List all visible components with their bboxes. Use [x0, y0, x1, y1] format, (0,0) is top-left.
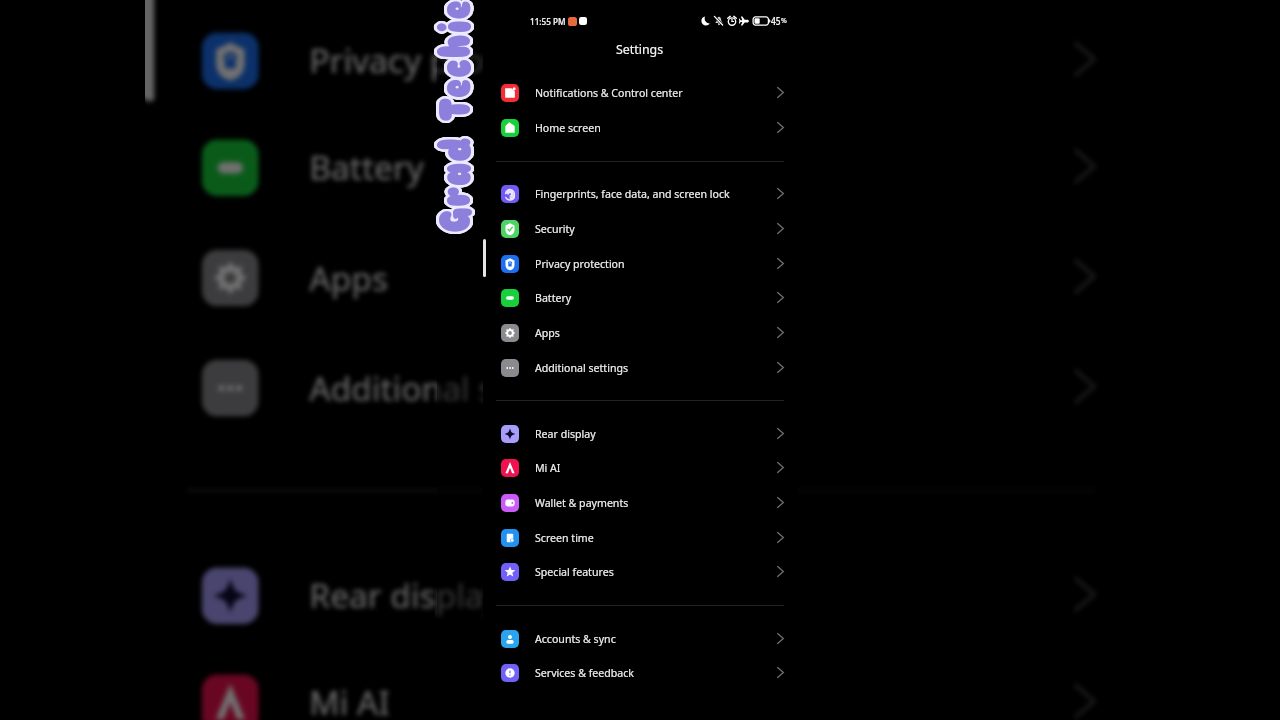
- staticText: Accounts & sync: [535, 632, 616, 646]
- staticText: Grad Techie: [429, 0, 483, 231]
- staticText: %: [781, 16, 787, 25]
- staticText: Notifications & Control center: [535, 86, 683, 100]
- staticText: Grad Techie: [429, 0, 483, 230]
- staticText: Grad Techie: [429, 0, 483, 232]
- staticText: Grad Techie: [426, 0, 480, 233]
- staticText: Grad Techie: [429, 0, 483, 233]
- staticText: Rear display: [309, 574, 437, 618]
- staticText: Grad Techie: [432, 0, 486, 232]
- button[interactable]: Rear display: [437, 539, 1137, 649]
- staticText: Additional settings: [437, 366, 606, 410]
- button[interactable]: Battery: [483, 280, 797, 315]
- button[interactable]: Services & feedback: [483, 655, 797, 690]
- staticText: Services & feedback: [535, 666, 634, 680]
- staticText: Security: [535, 222, 575, 236]
- button[interactable]: Privacy protection: [483, 246, 797, 281]
- button[interactable]: Security: [145, 0, 437, 4]
- button[interactable]: Security: [437, 0, 1137, 4]
- staticText: 11:55 PM: [530, 14, 566, 28]
- button[interactable]: Security: [483, 211, 797, 246]
- button[interactable]: Apps: [437, 221, 1137, 331]
- staticText: Grad Techie: [430, 1, 484, 234]
- staticText: Grad Techie: [428, 0, 482, 230]
- staticText: Privacy protection: [535, 257, 625, 271]
- staticText: Grad Techie: [428, 0, 482, 232]
- button[interactable]: Apps: [145, 221, 437, 331]
- staticText: Grad Techie: [426, 0, 480, 231]
- staticText: 45: [771, 15, 781, 28]
- staticText: Apps: [309, 256, 388, 300]
- staticText: Additional settings: [309, 366, 437, 410]
- staticText: Mi AI: [309, 681, 391, 720]
- staticText: Battery: [535, 291, 572, 305]
- button[interactable]: Battery: [437, 111, 1137, 221]
- button[interactable]: Apps: [483, 315, 797, 350]
- staticText: Grad Techie: [432, 0, 486, 231]
- staticText: Grad Techie: [426, 0, 480, 232]
- button[interactable]: Mi AI: [483, 450, 797, 485]
- staticText: Fingerprints, face data, and screen lock: [535, 187, 730, 201]
- button[interactable]: Accounts & sync: [483, 621, 797, 656]
- button[interactable]: Privacy protection: [145, 4, 437, 114]
- staticText: Grad Techie: [428, 0, 482, 233]
- staticText: Grad Techie: [429, 1, 483, 234]
- button[interactable]: Privacy protection: [437, 4, 1137, 114]
- button[interactable]: Mi AI: [145, 646, 437, 720]
- staticText: Grad Techie: [428, 0, 482, 231]
- staticText: Settings: [616, 41, 664, 58]
- button[interactable]: Rear display: [483, 416, 797, 451]
- staticText: Grad Techie: [430, 0, 484, 232]
- button[interactable]: Special features: [483, 554, 797, 589]
- button[interactable]: Screen time: [483, 520, 797, 555]
- button[interactable]: Additional settings: [145, 331, 437, 442]
- button[interactable]: Battery: [145, 111, 437, 221]
- staticText: Wallet & payments: [535, 496, 629, 510]
- staticText: Privacy protection: [309, 39, 437, 83]
- button[interactable]: Wallet & payments: [483, 485, 797, 520]
- staticText: Special features: [535, 565, 614, 579]
- button[interactable]: Additional settings: [437, 331, 1137, 442]
- button[interactable]: Home screen: [483, 110, 797, 145]
- staticText: Screen time: [535, 531, 594, 545]
- staticText: Grad Techie: [430, 0, 484, 230]
- staticText: Apps: [535, 326, 560, 340]
- staticText: Grad Techie: [430, 0, 484, 233]
- staticText: Additional settings: [535, 361, 629, 375]
- staticText: Mi AI: [535, 461, 561, 475]
- staticText: Home screen: [535, 121, 601, 135]
- staticText: Privacy protection: [437, 39, 594, 83]
- staticText: Rear display: [437, 574, 502, 618]
- staticText: Grad Techie: [428, 1, 482, 234]
- staticText: Battery: [309, 146, 426, 190]
- staticText: Grad Techie: [430, 0, 484, 231]
- button[interactable]: Notifications & Control center: [483, 75, 797, 110]
- button[interactable]: Rear display: [145, 539, 437, 649]
- button[interactable]: Fingerprints, face data, and screen lock: [483, 176, 797, 211]
- button[interactable]: Mi AI: [437, 646, 1137, 720]
- button[interactable]: Additional settings: [483, 350, 797, 385]
- staticText: Rear display: [535, 427, 596, 441]
- staticText: Grad Techie: [432, 0, 486, 233]
